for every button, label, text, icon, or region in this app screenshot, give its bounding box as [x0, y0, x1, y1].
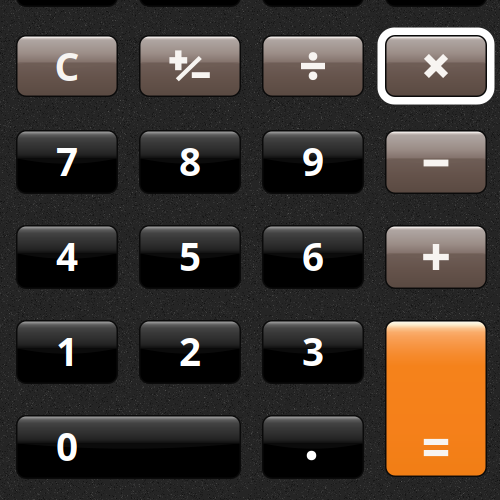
button[interactable]: 2 — [139, 320, 241, 384]
staticText: C — [54, 40, 79, 92]
button[interactable]: 4 — [16, 225, 118, 289]
staticText: 2 — [179, 325, 201, 377]
button[interactable]: Divide — [262, 35, 364, 97]
staticText: 4 — [56, 230, 78, 282]
staticText: 8 — [179, 135, 201, 187]
button[interactable]: Plus minus — [139, 35, 241, 97]
button[interactable]: Multiply — [385, 35, 487, 97]
staticText: 5 — [179, 230, 201, 282]
staticText: 3 — [302, 325, 324, 377]
button[interactable]: C — [16, 35, 118, 97]
button[interactable]: 5 — [139, 225, 241, 289]
button[interactable]: 9 — [262, 130, 364, 194]
button[interactable]: Memory — [262, 0, 364, 7]
button[interactable]: 8 — [139, 130, 241, 194]
button[interactable]: Memory — [385, 0, 487, 7]
button[interactable]: Equals — [385, 320, 487, 477]
button[interactable]: Plus — [385, 225, 487, 289]
staticText: 7 — [56, 135, 78, 187]
staticText: 6 — [302, 230, 324, 282]
staticText: 1 — [56, 325, 78, 377]
button[interactable]: 7 — [16, 130, 118, 194]
staticText: 9 — [302, 135, 324, 187]
button[interactable]: 6 — [262, 225, 364, 289]
button[interactable]: 0 — [16, 415, 241, 479]
staticText: 0 — [56, 420, 78, 472]
button[interactable]: 1 — [16, 320, 118, 384]
button[interactable]: Memory — [16, 0, 118, 7]
button[interactable]: Minus — [385, 130, 487, 194]
button[interactable]: 3 — [262, 320, 364, 384]
button[interactable]: Decimal point — [262, 415, 364, 479]
button[interactable]: Memory — [139, 0, 241, 7]
